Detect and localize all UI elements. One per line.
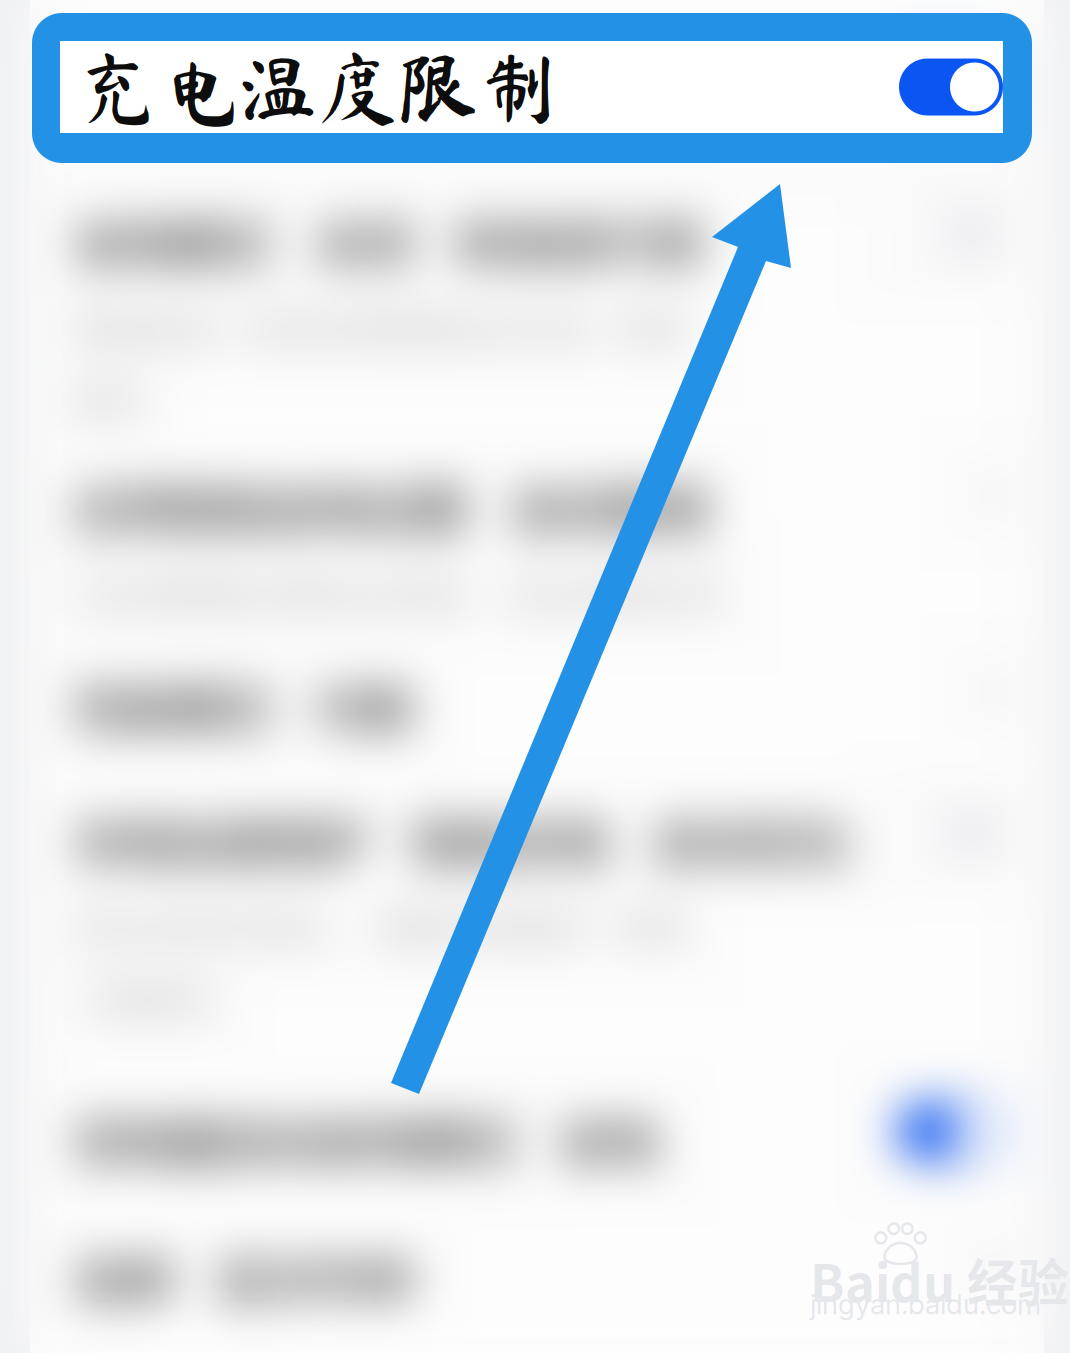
staticText: 了解更多	[75, 974, 215, 1024]
staticText: 为应用智能分配后台资源， 延长续航时间	[75, 568, 721, 619]
staticText: 到达设定时间后， 智能充电保护 详情	[75, 901, 683, 952]
staticText: jingyan.baidu.com	[810, 1287, 1041, 1321]
button[interactable]: 息屏 显示时钟	[30, 1206, 1044, 1326]
button[interactable]: 充电温度限制	[30, 0, 1044, 163]
button[interactable]: 充电加速保护 智能充电 自动优化	[30, 768, 1044, 1067]
staticText: 低电量自动省电模式 省电	[75, 1103, 658, 1174]
button[interactable]: 性能模式 均衡	[30, 632, 1044, 768]
staticText: 息屏 显示时钟	[75, 1242, 413, 1313]
staticText: 省电模式 关闭 耗电排行榜	[75, 205, 702, 276]
staticText: 应用智能省电设置 自动管理	[75, 471, 707, 542]
staticText: Baidu 经验	[810, 1243, 1069, 1316]
staticText: 性能模式 均衡	[75, 670, 413, 741]
button[interactable]: 省电模式 关闭 耗电排行榜	[30, 165, 1044, 433]
staticText: 充电加速保护 智能充电 自动优化	[75, 804, 849, 875]
button[interactable]: 低电量自动省电模式 省电	[30, 1067, 1044, 1206]
button[interactable]: 应用智能省电设置 自动管理	[30, 433, 1044, 632]
staticText: 充电温度限制	[78, 47, 558, 127]
button[interactable]: 充电温度限制	[32, 13, 1032, 163]
staticText: 充电温度限制	[75, 50, 369, 121]
